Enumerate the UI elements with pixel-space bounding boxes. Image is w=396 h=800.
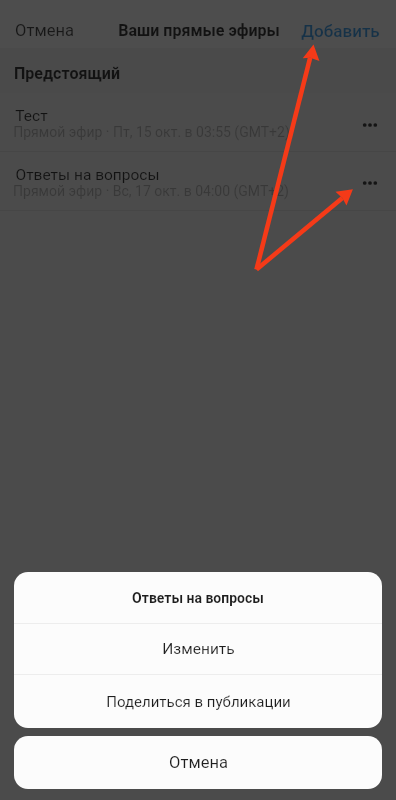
- button[interactable]: Поделиться в публикации: [14, 675, 382, 728]
- staticText: Ответы на вопросы: [15, 166, 160, 184]
- button[interactable]: Ответы на вопросы: [0, 152, 396, 211]
- button[interactable]: Ещё: [352, 107, 388, 143]
- button[interactable]: Тест: [0, 93, 396, 152]
- staticText: Ответы на вопросы: [132, 590, 264, 606]
- staticText: Ваши прямые эфиры: [118, 21, 280, 40]
- staticText: Изменить: [162, 640, 235, 658]
- staticText: Прямой эфир · Пт, 15 окт. в 03:55 (GMT+2…: [13, 124, 290, 140]
- staticText: Предстоящий: [14, 64, 120, 83]
- staticText: Тест: [15, 107, 48, 125]
- button[interactable]: Отмена: [4, 16, 85, 45]
- button[interactable]: Отмена: [14, 736, 382, 789]
- staticText: Отмена: [169, 753, 228, 772]
- button[interactable]: Изменить: [14, 624, 382, 674]
- staticText: Отмена: [15, 21, 74, 40]
- button[interactable]: Ещё: [352, 165, 388, 201]
- staticText: Прямой эфир · Вс, 17 окт. в 04:00 (GMT+2…: [13, 183, 289, 199]
- staticText: Добавить: [301, 21, 380, 41]
- staticText: Поделиться в публикации: [106, 693, 291, 711]
- button[interactable]: Добавить: [290, 16, 391, 46]
